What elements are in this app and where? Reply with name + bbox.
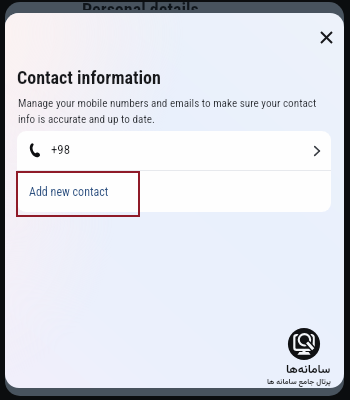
staticText: Personal details	[82, 2, 199, 10]
staticText: پرتال جامع سامانه ها	[267, 376, 331, 388]
staticText: info is accurate and up to date.	[18, 113, 155, 126]
staticText: Add new contact	[29, 185, 109, 199]
staticText: +98	[51, 142, 70, 157]
button[interactable]: Add new contact	[17, 171, 331, 212]
staticText: Contact information	[17, 67, 161, 88]
staticText: سامانه‌ها	[286, 361, 331, 380]
button[interactable]: +98	[17, 131, 331, 170]
button[interactable]: Close	[312, 23, 340, 51]
staticText: Manage your mobile numbers and emails to…	[18, 97, 317, 110]
